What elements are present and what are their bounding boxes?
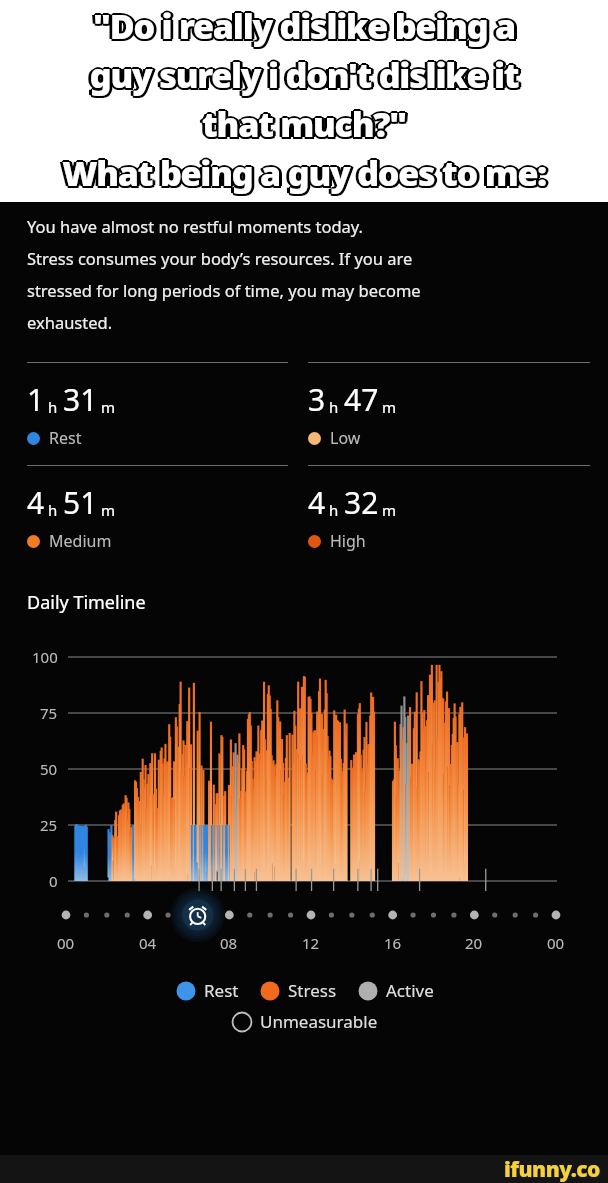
staticText: h <box>329 500 339 520</box>
staticText: 51 <box>63 482 98 523</box>
staticText: that much?" <box>0 100 607 146</box>
staticText: guy surely i don't dislike it <box>0 54 608 100</box>
staticText: that much?" <box>0 103 608 149</box>
staticText: that much?" <box>3 101 608 147</box>
staticText: 04 <box>139 933 157 953</box>
staticText: What being a guy does to me: <box>0 150 608 196</box>
staticText: that much?" <box>0 101 605 147</box>
button[interactable]: Rest <box>175 979 239 1002</box>
staticText: Medium <box>49 530 112 552</box>
staticText: that much?" <box>2 101 608 147</box>
staticText: Rest <box>204 979 239 1002</box>
staticText: "Do i really dislike being a <box>0 5 608 51</box>
staticText: "Do i really dislike being a <box>0 3 608 49</box>
staticText: guy surely i don't dislike it <box>2 54 608 100</box>
button[interactable]: Alarm <box>176 895 214 933</box>
button[interactable]: 4 <box>308 465 590 552</box>
staticText: "Do i really dislike being a <box>3 3 608 49</box>
staticText: 32 <box>344 482 379 523</box>
staticText: 1 <box>27 379 45 420</box>
staticText: guy surely i don't dislike it <box>0 52 606 98</box>
button[interactable]: 1 <box>27 362 288 449</box>
staticText: 12 <box>302 933 320 953</box>
staticText: that much?" <box>0 101 608 147</box>
staticText: "Do i really dislike being a <box>0 1 608 47</box>
staticText: What being a guy does to me: <box>0 149 607 195</box>
staticText: guy surely i don't dislike it <box>2 51 608 97</box>
staticText: h <box>48 397 58 417</box>
staticText: guy surely i don't dislike it <box>0 52 608 98</box>
staticText: High <box>330 530 366 552</box>
staticText: "Do i really dislike being a <box>0 5 607 51</box>
staticText: What being a guy does to me: <box>0 150 606 196</box>
staticText: 0 <box>49 871 58 891</box>
staticText: m <box>382 397 397 417</box>
staticText: guy surely i don't dislike it <box>2 52 608 98</box>
staticText: You have almost no restful moments today… <box>27 215 364 237</box>
staticText: What being a guy does to me: <box>0 152 608 198</box>
staticText: guy surely i don't dislike it <box>0 51 607 97</box>
staticText: What being a guy does to me: <box>0 150 605 196</box>
staticText: Stress consumes your body’s resources. I… <box>27 247 413 269</box>
staticText: What being a guy does to me: <box>2 150 608 196</box>
staticText: 4 <box>308 482 326 523</box>
staticText: Unmeasurable <box>260 1010 378 1033</box>
staticText: 100 <box>32 647 58 667</box>
staticText: Active <box>386 979 434 1002</box>
staticText: "Do i really dislike being a <box>0 3 605 49</box>
staticText: 3 <box>308 379 326 420</box>
staticText: What being a guy does to me: <box>3 150 608 196</box>
button[interactable]: 3 <box>308 362 590 449</box>
staticText: 50 <box>40 759 58 779</box>
staticText: 20 <box>465 933 483 953</box>
staticText: that much?" <box>0 101 606 147</box>
button[interactable]: Stress <box>259 979 337 1002</box>
staticText: "Do i really dislike being a <box>2 2 608 48</box>
button[interactable]: 4 <box>27 465 288 552</box>
staticText: ifunny.co <box>504 1155 600 1183</box>
staticText: m <box>101 500 116 520</box>
staticText: Low <box>330 427 361 449</box>
staticText: 4 <box>27 482 45 523</box>
staticText: h <box>329 397 339 417</box>
staticText: that much?" <box>2 100 608 146</box>
staticText: m <box>382 500 397 520</box>
staticText: stressed for long periods of time, you m… <box>27 279 421 301</box>
button[interactable]: Unmeasurable <box>231 1010 378 1033</box>
staticText: What being a guy does to me: <box>0 152 607 198</box>
staticText: What being a guy does to me: <box>2 149 608 195</box>
staticText: 75 <box>40 703 58 723</box>
staticText: exhausted. <box>27 311 113 333</box>
staticText: 16 <box>384 933 402 953</box>
staticText: 08 <box>220 933 238 953</box>
staticText: 31 <box>63 379 98 420</box>
staticText: guy surely i don't dislike it <box>3 52 608 98</box>
staticText: h <box>48 500 58 520</box>
staticText: "Do i really dislike being a <box>0 2 607 48</box>
staticText: Daily Timeline <box>27 590 146 615</box>
staticText: What being a guy does to me: <box>2 152 608 198</box>
staticText: 25 <box>40 815 58 835</box>
staticText: that much?" <box>0 103 607 149</box>
staticText: 00 <box>57 933 75 953</box>
staticText: that much?" <box>2 103 608 149</box>
staticText: guy surely i don't dislike it <box>0 50 608 96</box>
staticText: 47 <box>344 379 379 420</box>
staticText: guy surely i don't dislike it <box>0 52 605 98</box>
staticText: What being a guy does to me: <box>0 148 608 194</box>
button[interactable]: Active <box>357 979 434 1002</box>
staticText: "Do i really dislike being a <box>0 3 606 49</box>
staticText: Stress <box>288 979 337 1002</box>
staticText: "Do i really dislike being a <box>2 3 608 49</box>
staticText: "Do i really dislike being a <box>2 5 608 51</box>
staticText: 00 <box>547 933 565 953</box>
staticText: m <box>101 397 116 417</box>
staticText: that much?" <box>0 99 608 145</box>
staticText: Rest <box>49 427 82 449</box>
staticText: guy surely i don't dislike it <box>0 54 607 100</box>
